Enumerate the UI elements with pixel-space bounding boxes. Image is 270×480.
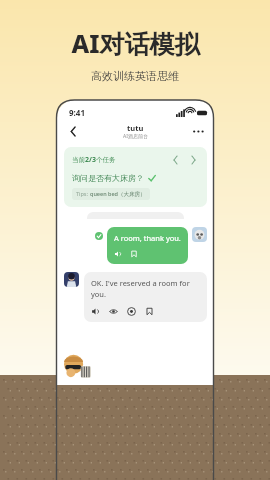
- button[interactable]: Bookmark: [145, 307, 154, 316]
- staticText: Tips:: [76, 190, 90, 197]
- button[interactable]: More options: [190, 123, 206, 139]
- staticText: 询问是否有大床房？: [72, 173, 144, 183]
- staticText: AI对话模拟: [71, 26, 200, 60]
- staticText: 高效训练英语思维: [91, 69, 179, 83]
- staticText: AI酒店前台: [123, 133, 148, 140]
- staticText: 9:41: [69, 107, 85, 118]
- button[interactable]: Play audio: [91, 307, 100, 316]
- staticText: 2/3: [85, 155, 96, 165]
- button[interactable]: 当前: [64, 147, 207, 207]
- button[interactable]: A room, thank you.: [107, 227, 188, 264]
- staticText: 个任务: [96, 156, 116, 164]
- staticText: 当前: [72, 156, 85, 164]
- staticText: queen bed（大床房）: [90, 190, 146, 198]
- button[interactable]: Play audio: [114, 250, 122, 258]
- staticText: tutu: [127, 123, 144, 133]
- button[interactable]: Previous task: [169, 154, 181, 166]
- button[interactable]: OK. I've reserved a room for you.: [84, 272, 207, 322]
- button[interactable]: Slow playback: [127, 307, 136, 316]
- button[interactable]: Bookmark: [130, 250, 138, 258]
- staticText: OK. I've reserved a room for you.: [91, 278, 200, 299]
- button[interactable]: Show translation: [109, 307, 118, 316]
- staticText: A room, thank you.: [114, 233, 181, 243]
- button[interactable]: Next task: [187, 154, 199, 166]
- button[interactable]: Back: [65, 123, 81, 139]
